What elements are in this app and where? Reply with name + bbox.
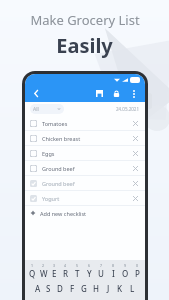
button[interactable]: 4 bbox=[60, 263, 71, 279]
staticText: F bbox=[70, 283, 75, 294]
button[interactable]: Add new checklist bbox=[25, 206, 145, 220]
button[interactable]: 7 bbox=[95, 263, 107, 279]
staticText: O bbox=[122, 268, 129, 279]
staticText: Y bbox=[87, 268, 92, 279]
button[interactable]: 3 bbox=[49, 263, 60, 279]
staticText: E bbox=[52, 268, 57, 279]
button[interactable]: 1 bbox=[27, 263, 38, 279]
staticText: 5 bbox=[76, 263, 79, 268]
button[interactable]: Ground beef bbox=[25, 161, 145, 175]
button[interactable]: More options bbox=[127, 87, 140, 100]
button[interactable]: G bbox=[78, 283, 90, 294]
button[interactable]: 6 bbox=[83, 263, 95, 279]
button[interactable]: Eggs bbox=[25, 146, 145, 160]
staticText: D bbox=[57, 283, 63, 294]
staticText: 3 bbox=[53, 263, 56, 268]
staticText: Tomatoes bbox=[42, 120, 68, 127]
button[interactable]: S bbox=[43, 283, 54, 294]
button[interactable]: Chicken breast bbox=[25, 131, 145, 145]
staticText: Add new checklist bbox=[40, 210, 87, 217]
button[interactable]: Back bbox=[30, 87, 43, 100]
button[interactable]: A bbox=[32, 283, 43, 294]
staticText: U bbox=[98, 268, 104, 279]
staticText: Eggs bbox=[42, 150, 55, 157]
staticText: Chicken breast bbox=[42, 135, 81, 142]
staticText: All bbox=[33, 106, 39, 113]
staticText: W bbox=[40, 268, 48, 279]
staticText: T bbox=[75, 268, 80, 279]
staticText: 7 bbox=[100, 263, 103, 268]
staticText: Q bbox=[29, 268, 36, 279]
button[interactable]: L bbox=[126, 283, 138, 294]
button[interactable]: J bbox=[102, 283, 114, 294]
staticText: 24.05.2021 bbox=[116, 106, 140, 112]
staticText: 9 bbox=[124, 263, 127, 268]
button[interactable]: All bbox=[30, 104, 64, 114]
button[interactable]: Remove Eggs bbox=[131, 149, 140, 158]
button[interactable]: Remove Ground beef bbox=[131, 164, 140, 173]
staticText: R bbox=[63, 268, 69, 279]
staticText: J bbox=[107, 283, 110, 294]
button[interactable]: D bbox=[54, 283, 66, 294]
button[interactable]: Remove Chicken breast bbox=[131, 134, 140, 143]
staticText: H bbox=[93, 283, 99, 294]
staticText: Ground beef bbox=[42, 165, 75, 172]
button[interactable]: 8 bbox=[107, 263, 119, 279]
staticText: 8 bbox=[112, 263, 115, 268]
button[interactable]: Remove Ground beef bbox=[131, 179, 140, 188]
button[interactable]: Remove Yogurt bbox=[131, 194, 140, 203]
button[interactable]: F bbox=[66, 283, 78, 294]
button[interactable]: Tomatoes bbox=[25, 116, 145, 130]
staticText: 0 bbox=[136, 263, 139, 268]
button[interactable]: Ground beef bbox=[25, 176, 145, 190]
staticText: I bbox=[112, 268, 115, 279]
staticText: L bbox=[130, 283, 135, 294]
staticText: S bbox=[46, 283, 51, 294]
button[interactable]: Yogurt bbox=[25, 191, 145, 205]
staticText: Ground beef bbox=[42, 180, 75, 187]
staticText: K bbox=[117, 283, 123, 294]
staticText: Easily bbox=[56, 32, 113, 59]
staticText: 6 bbox=[88, 263, 91, 268]
staticText: P bbox=[135, 268, 140, 279]
button[interactable]: 2 bbox=[38, 263, 49, 279]
staticText: 4 bbox=[64, 263, 67, 268]
staticText: A bbox=[35, 283, 41, 294]
button[interactable]: Lock bbox=[110, 87, 123, 100]
staticText: Make Grocery List bbox=[30, 11, 140, 29]
staticText: G bbox=[81, 283, 87, 294]
staticText: 1 bbox=[31, 263, 34, 268]
staticText: 2 bbox=[42, 263, 45, 268]
button[interactable]: K bbox=[114, 283, 126, 294]
button[interactable]: 0 bbox=[131, 263, 143, 279]
button[interactable]: H bbox=[90, 283, 102, 294]
button[interactable]: 5 bbox=[71, 263, 83, 279]
button[interactable]: Save bbox=[93, 87, 106, 100]
button[interactable]: Remove Tomatoes bbox=[131, 119, 140, 128]
staticText: Yogurt bbox=[42, 195, 60, 202]
button[interactable]: 9 bbox=[119, 263, 131, 279]
